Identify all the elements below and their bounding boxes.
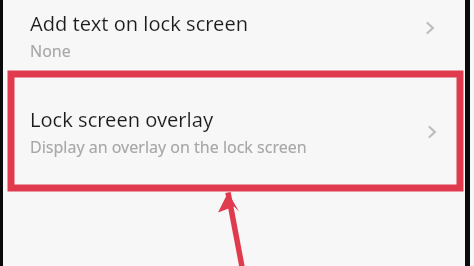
- staticText: Add text on lock screen: [30, 10, 249, 37]
- other: Open: [410, 8, 450, 48]
- button[interactable]: Lock screen overlay: [16, 82, 458, 182]
- other: Open: [412, 112, 452, 152]
- staticText: Lock screen overlay: [30, 106, 214, 133]
- staticText: Display an overlay on the lock screen: [30, 136, 307, 158]
- staticText: None: [30, 40, 71, 62]
- button[interactable]: Add text on lock screen: [0, 0, 474, 72]
